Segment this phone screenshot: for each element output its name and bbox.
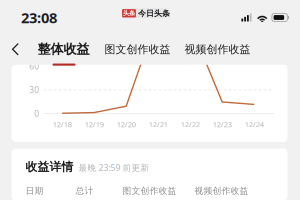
staticText: 12/18 (53, 119, 72, 129)
staticText: 总计 (75, 185, 93, 196)
staticText: 收益详情 (25, 159, 73, 174)
staticText: 整体收益 (37, 41, 89, 57)
staticText: 视频创作收益 (194, 185, 248, 196)
staticText: 12/19 (85, 119, 104, 129)
staticText: 最晚 23:59 前更新 (78, 162, 149, 173)
staticText: 图文创作收益 (122, 185, 176, 196)
staticText: 12/24 (245, 119, 264, 129)
staticText: 视频创作收益 (184, 42, 250, 56)
staticText: 12/20 (117, 119, 136, 129)
button[interactable]: 图文创作收益 (101, 38, 173, 60)
staticText: 图文创作收益 (104, 42, 170, 56)
staticText: 30 (29, 84, 39, 95)
staticText: 今日头条 (138, 8, 170, 18)
staticText: 12/21 (149, 119, 168, 129)
staticText: 12/22 (181, 119, 200, 129)
staticText: 60 (29, 60, 39, 72)
staticText: 12/23 (213, 119, 232, 129)
staticText: 23:08 (21, 7, 57, 27)
staticText: 头条 (123, 9, 135, 17)
button[interactable]: 返回 (0, 37, 34, 62)
button[interactable]: 整体收益 (34, 37, 92, 61)
staticText: 日期 (25, 185, 43, 196)
button[interactable]: 视频创作收益 (181, 38, 253, 60)
staticText: 0 (34, 108, 39, 119)
